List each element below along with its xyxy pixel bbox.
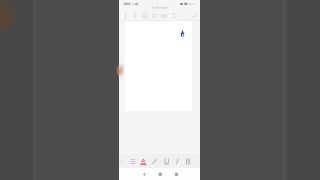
button[interactable]: Text format	[121, 9, 131, 21]
button[interactable]: Highlight	[150, 154, 160, 168]
button[interactable]	[119, 21, 200, 154]
button[interactable]: Back	[138, 168, 150, 180]
button[interactable]: Share	[174, 9, 184, 21]
button[interactable]: More	[117, 154, 127, 168]
button[interactable]: Home	[154, 168, 166, 180]
button[interactable]: Recent apps	[171, 168, 183, 180]
button[interactable]: Done	[190, 9, 199, 21]
button[interactable]: Italic	[172, 154, 182, 168]
button[interactable]: Paragraph style	[134, 9, 144, 21]
button[interactable]: Text colour	[138, 154, 148, 168]
button[interactable]: Find	[164, 9, 174, 21]
button[interactable]: Bold	[183, 154, 193, 168]
button[interactable]: Insert image	[144, 9, 154, 21]
button[interactable]: Underline	[162, 154, 172, 168]
button[interactable]: Bulleted list	[128, 154, 138, 168]
button[interactable]: Comment	[154, 9, 164, 21]
